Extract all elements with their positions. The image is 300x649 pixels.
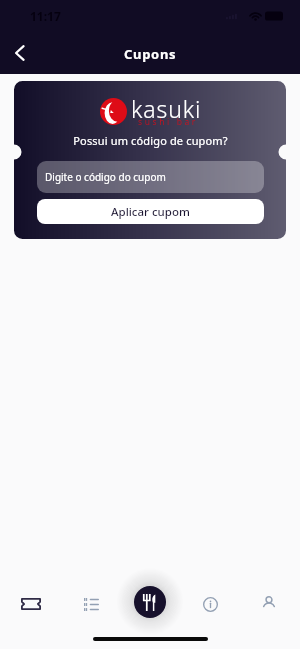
button[interactable]: Back — [3, 36, 37, 70]
button[interactable]: Digite o código do cupom — [37, 161, 264, 193]
button[interactable]: Coupons — [10, 583, 52, 625]
staticText: Digite o código do cupom — [45, 170, 166, 184]
button[interactable]: Orders — [70, 583, 112, 625]
button[interactable]: Info — [189, 583, 231, 625]
button[interactable]: Restaurant menu — [134, 586, 166, 618]
button[interactable]: Profile — [248, 582, 290, 624]
button[interactable]: Aplicar cupom — [37, 199, 264, 224]
staticText: Cupons — [124, 45, 177, 63]
staticText: kasuki — [131, 93, 202, 124]
staticText: Possui um código de cupom? — [73, 133, 228, 148]
staticText: 11:17 — [30, 8, 61, 24]
staticText: sushi bar — [138, 116, 198, 128]
staticText: Aplicar cupom — [111, 204, 190, 220]
